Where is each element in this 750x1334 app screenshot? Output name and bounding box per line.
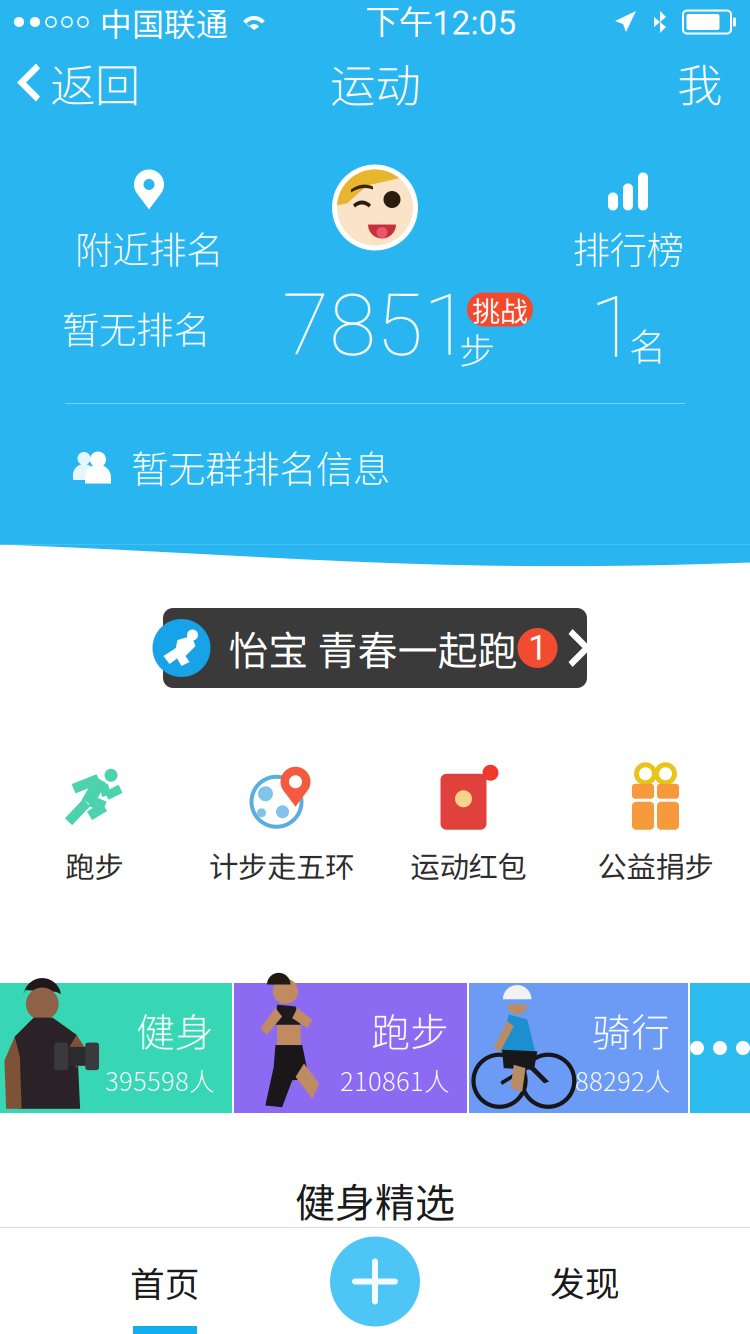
button[interactable]: 跑步 [1, 762, 188, 888]
button[interactable]: 首页 [80, 1228, 250, 1334]
staticText: 暂无群排名信息 [131, 439, 390, 494]
button[interactable]: 骑行 [469, 983, 688, 1113]
staticText: 1 [528, 628, 547, 668]
staticText: 发现 [550, 1256, 620, 1307]
staticText: 返回 [50, 50, 140, 115]
button[interactable]: 我 [657, 40, 750, 125]
button[interactable]: More [690, 983, 750, 1113]
staticText: 健身精选 [295, 1171, 455, 1229]
staticText: 挑战 [472, 289, 528, 330]
button[interactable]: 暂无群排名信息 [0, 430, 750, 502]
button[interactable]: 计步走五环 [188, 762, 375, 888]
button[interactable]: 怡宝 青春一起跑 [163, 608, 587, 688]
button[interactable]: 发现 [500, 1228, 670, 1334]
staticText: 步 [459, 322, 495, 374]
staticText: 跑步 [65, 844, 123, 886]
staticText: 排行榜 [572, 220, 683, 275]
staticText: 我 [677, 50, 722, 115]
button[interactable]: 跑步 [234, 983, 467, 1113]
staticText: 计步走五环 [209, 844, 354, 886]
button[interactable]: 运动红包 [375, 762, 562, 888]
staticText: 健身 [136, 1002, 214, 1058]
staticText: 下午12:05 [366, 1, 516, 43]
staticText: 88292人 [575, 1062, 670, 1098]
staticText: 1 [589, 277, 636, 377]
staticText: 怡宝 青春一起跑 [228, 619, 517, 677]
staticText: 运动红包 [410, 844, 526, 886]
staticText: 210861人 [340, 1062, 449, 1098]
staticText: 附近排名 [75, 220, 223, 275]
staticText: 跑步 [371, 1002, 449, 1058]
staticText: 7851 [282, 275, 470, 375]
button[interactable]: 排行榜 [564, 160, 691, 283]
button[interactable]: 公益捐步 [562, 762, 749, 888]
staticText: 运动 [330, 50, 420, 115]
staticText: 中国联通 [100, 0, 228, 45]
button[interactable]: 健身 [0, 983, 232, 1113]
button[interactable]: Add [330, 1236, 420, 1326]
button[interactable]: 返回 [0, 40, 140, 125]
staticText: 395598人 [105, 1062, 214, 1098]
staticText: 暂无排名 [62, 300, 210, 355]
staticText: 骑行 [592, 1002, 670, 1058]
staticText: 公益捐步 [597, 844, 713, 886]
staticText: 名 [628, 317, 665, 372]
button[interactable]: 附近排名 [67, 160, 231, 283]
button[interactable]: Profile [332, 164, 418, 250]
staticText: 首页 [130, 1257, 200, 1307]
